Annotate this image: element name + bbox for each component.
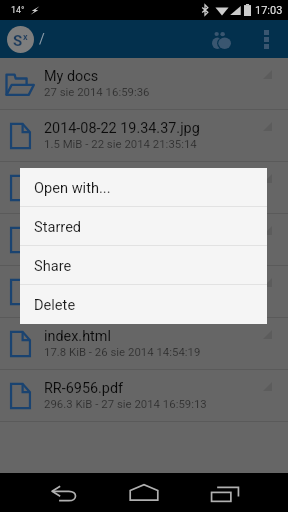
staticText: readme.txt [44,276,113,293]
button[interactable]: Open with... [20,168,267,206]
staticText: Open with... [34,179,111,196]
staticText: Share [34,257,72,274]
staticText: RR-6956.pdf [44,380,124,397]
staticText: Delete [34,296,76,313]
staticText: 296.3 KiB - 27 sie 2014 16:59:13 [44,397,207,410]
button[interactable]: Delete [20,285,267,323]
button[interactable]: Share [20,246,267,284]
button[interactable]: RR-6956.pdf [0,370,288,422]
button[interactable]: index.html [0,318,288,370]
button[interactable]: My docs [0,58,288,110]
button[interactable]: Back [36,473,92,512]
button[interactable]: 2014-08-22 19.34.37.jpg [0,110,288,162]
button[interactable]: Recent apps [197,473,253,512]
staticText: 14° [11,5,25,16]
staticText: 1.1 KiB - 25 sie 2014 20:18:55 [44,293,194,306]
staticText: 2.2 MiB - 23 sie 2014 10:12:08 [44,189,197,202]
staticText: 17:03 [255,4,283,17]
button[interactable]: Home [116,473,172,512]
button[interactable]: budget.xls [0,214,288,266]
button[interactable]: Accounts [202,20,240,58]
staticText: 27 sie 2014 16:59:36 [44,85,150,98]
staticText: / [39,31,45,47]
button[interactable]: More options [253,20,279,58]
staticText: 2014-08-23 10.12.08.jpg [44,172,200,189]
staticText: S [13,32,23,50]
staticText: Starred [34,218,82,235]
button[interactable]: readme.txt [0,266,288,318]
staticText: 44.1 KiB - 24 sie 2014 08:05:31 [44,241,201,254]
staticText: index.html [44,328,111,345]
button[interactable]: 2014-08-23 10.12.08.jpg [0,162,288,214]
staticText: x [23,32,28,43]
staticText: 17.8 KiB - 26 sie 2014 14:54:19 [44,345,201,358]
staticText: My docs [44,68,99,85]
button[interactable]: Home [7,26,34,53]
staticText: 1.5 MiB - 22 sie 2014 21:35:14 [44,137,197,150]
staticText: 2014-08-22 19.34.37.jpg [44,120,200,137]
button[interactable]: Starred [20,207,267,245]
staticText: budget.xls [44,224,111,241]
